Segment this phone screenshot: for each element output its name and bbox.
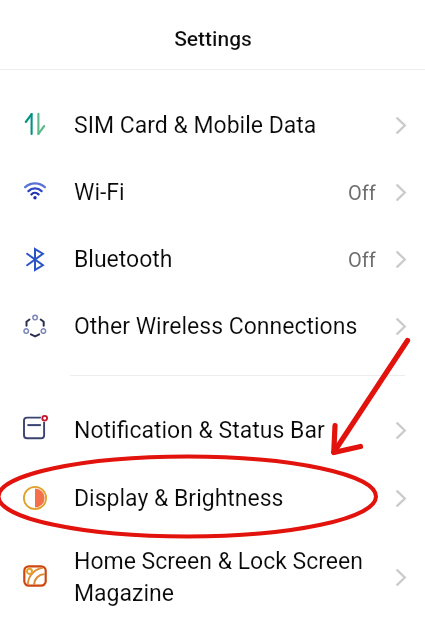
button[interactable]: Wi-Fi xyxy=(0,159,425,226)
staticText: Other Wireless Connections xyxy=(74,313,371,340)
staticText: Notification & Status Bar xyxy=(74,417,371,444)
button[interactable]: SIM card and mobile data xyxy=(0,92,425,159)
staticText: Bluetooth xyxy=(74,246,342,273)
staticText: Home Screen & Lock Screen Magazine xyxy=(74,548,371,607)
staticText: SIM Card & Mobile Data xyxy=(74,112,371,139)
other: Bluetooth xyxy=(26,248,44,271)
staticText: Off xyxy=(348,248,376,271)
other: Display and brightness xyxy=(23,486,47,510)
other: Home screen and lock screen magazine xyxy=(23,565,47,587)
staticText: Off xyxy=(348,181,376,204)
staticText: Settings xyxy=(174,27,252,52)
other: SIM card and mobile data xyxy=(25,113,45,135)
other: Wi-Fi xyxy=(24,181,46,200)
button[interactable]: Other wireless connections xyxy=(0,293,425,360)
staticText: Wi-Fi xyxy=(74,179,342,206)
button[interactable]: Notification and status bar xyxy=(0,396,425,464)
button[interactable]: Home screen and lock screen magazine xyxy=(0,532,425,622)
button[interactable]: Bluetooth xyxy=(0,226,425,293)
other: Notification and status bar xyxy=(23,416,47,440)
staticText: Display & Brightness xyxy=(74,485,371,512)
other: Other wireless connections xyxy=(23,314,47,338)
button[interactable]: Display and brightness xyxy=(0,464,425,532)
